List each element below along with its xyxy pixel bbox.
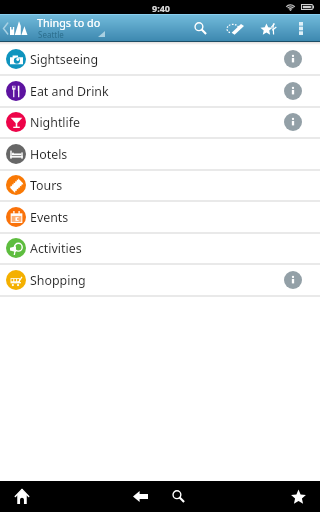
button[interactable]: More options xyxy=(290,14,312,42)
button[interactable]: Search xyxy=(185,14,215,42)
button[interactable]: Sightseeing xyxy=(0,44,320,76)
button[interactable]: Nightlife xyxy=(0,107,320,139)
staticText: Events xyxy=(30,209,69,226)
button[interactable]: Favorites xyxy=(284,482,313,510)
button[interactable]: Events xyxy=(0,202,320,234)
button[interactable]: Search xyxy=(164,482,193,510)
button[interactable]: Save xyxy=(253,14,283,42)
staticText: Shopping xyxy=(30,272,86,289)
button[interactable]: Activities xyxy=(0,233,320,265)
button[interactable]: Info xyxy=(284,271,302,289)
button[interactable]: Things to do xyxy=(37,14,107,42)
button[interactable]: Hotels xyxy=(0,139,320,171)
button[interactable]: Back xyxy=(126,482,155,510)
button[interactable]: Info xyxy=(284,113,302,131)
button[interactable]: Eat and Drink xyxy=(0,76,320,108)
button[interactable]: Info xyxy=(284,50,302,68)
staticText: Things to do xyxy=(37,15,101,30)
staticText: Sightseeing xyxy=(30,51,99,68)
staticText: Seattle xyxy=(38,29,64,40)
button[interactable]: Home xyxy=(7,482,36,510)
staticText: Hotels xyxy=(30,146,68,163)
staticText: Tours xyxy=(30,177,63,194)
button[interactable]: Shopping xyxy=(0,265,320,297)
button[interactable]: Info xyxy=(284,82,302,100)
staticText: Nightlife xyxy=(30,114,81,131)
staticText: 9:40 xyxy=(152,2,170,14)
staticText: Activities xyxy=(30,240,82,257)
button[interactable]: Tours xyxy=(0,170,320,202)
staticText: Eat and Drink xyxy=(30,83,109,100)
button[interactable]: Write a review xyxy=(220,14,250,42)
button[interactable]: Back xyxy=(0,14,38,42)
